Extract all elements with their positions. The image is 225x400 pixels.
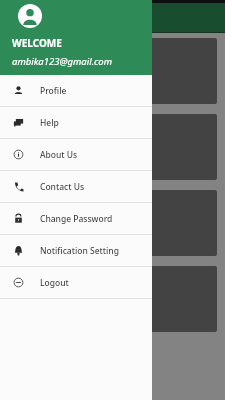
staticText: Profile bbox=[40, 85, 67, 97]
staticText: Contact Us bbox=[40, 181, 85, 193]
staticText: Exam Calendar bbox=[16, 197, 82, 209]
button[interactable]: Contact Us bbox=[0, 171, 152, 202]
staticText: About Us bbox=[40, 149, 78, 161]
button[interactable]: Logout bbox=[0, 267, 152, 298]
staticText: Notes bbox=[16, 121, 43, 133]
staticText: Logout bbox=[40, 277, 69, 289]
button[interactable]: Help bbox=[0, 107, 152, 138]
button[interactable]: About Us bbox=[0, 139, 152, 170]
staticText: Help bbox=[40, 117, 59, 129]
button[interactable]: Exam Calendar bbox=[8, 190, 217, 256]
button[interactable]: Attendance bbox=[8, 266, 217, 332]
staticText: Change Password bbox=[40, 213, 113, 225]
button[interactable]: Profile bbox=[0, 75, 152, 106]
button[interactable]: Notification Setting bbox=[0, 235, 152, 266]
button[interactable]: TimeTable bbox=[8, 38, 217, 104]
staticText: WELCOME bbox=[12, 36, 62, 50]
staticText: Notification Setting bbox=[40, 245, 119, 257]
button[interactable]: Change Password bbox=[0, 203, 152, 234]
button[interactable]: Notes bbox=[8, 114, 217, 180]
staticText: Attendance bbox=[16, 273, 67, 285]
staticText: TimeTable bbox=[16, 45, 61, 57]
staticText: ambika123@gmail.com bbox=[12, 55, 113, 68]
